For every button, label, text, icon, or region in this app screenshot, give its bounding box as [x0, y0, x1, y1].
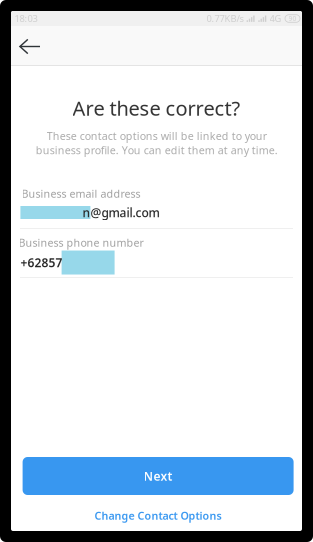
- staticText: Change Contact Options: [94, 508, 221, 523]
- staticText: 18:03: [14, 12, 37, 25]
- staticText: 90: [288, 14, 296, 23]
- staticText: 0.77KB/s: [207, 12, 244, 25]
- staticText: Business phone number: [18, 235, 143, 250]
- staticText: +62857: [20, 254, 62, 270]
- staticText: 4G: [269, 12, 281, 25]
- button[interactable]: Back: [11, 25, 52, 65]
- button[interactable]: Change Contact Options: [78, 504, 238, 526]
- staticText: These contact options will be linked to …: [35, 129, 277, 157]
- staticText: Are these correct?: [72, 95, 240, 121]
- staticText: Business email address: [21, 186, 140, 201]
- staticText: n@gmail.com: [82, 204, 159, 220]
- staticText: Next: [144, 468, 173, 484]
- button[interactable]: Next: [23, 457, 294, 495]
